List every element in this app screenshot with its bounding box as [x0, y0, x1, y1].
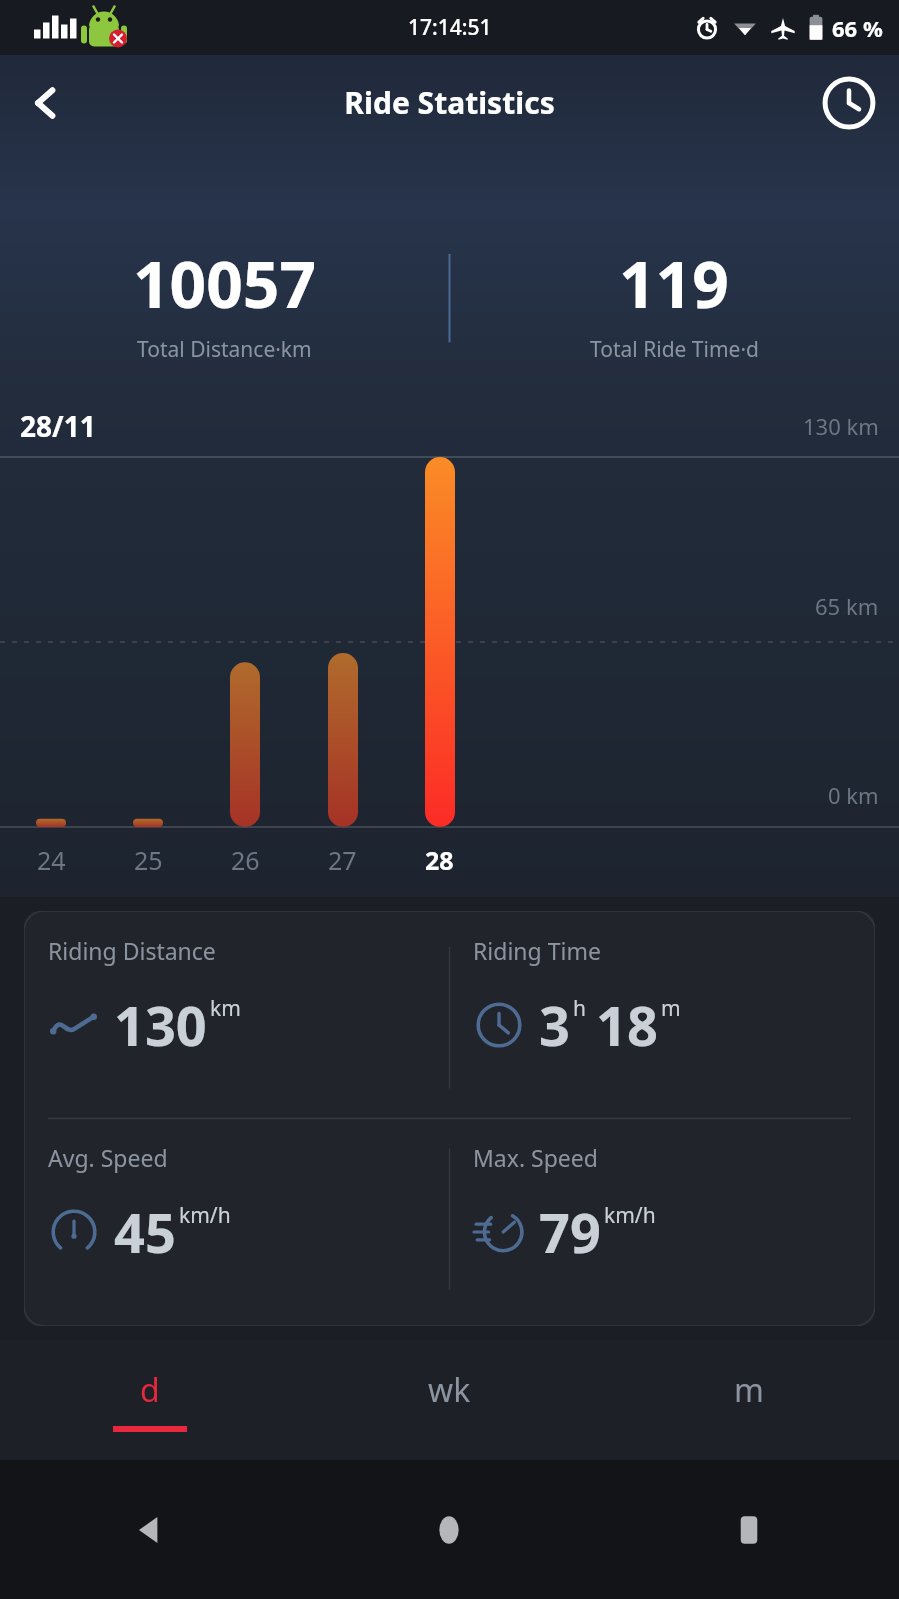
- button[interactable]: Home: [299, 1460, 599, 1599]
- button[interactable]: 119: [449, 240, 899, 364]
- staticText: Riding Distance: [48, 935, 216, 966]
- staticText: d: [140, 1368, 160, 1412]
- staticText: 17:14:51: [408, 13, 492, 42]
- staticText: Total Distance·km: [137, 335, 312, 364]
- button[interactable]: d: [0, 1340, 299, 1460]
- staticText: 18: [596, 988, 658, 1062]
- button[interactable]: wk: [299, 1340, 599, 1460]
- staticText: wk: [428, 1368, 471, 1412]
- button[interactable]: Riding Distance: [24, 911, 449, 1118]
- staticText: 79: [539, 1195, 601, 1269]
- button[interactable]: m: [599, 1340, 899, 1460]
- staticText: 45: [114, 1195, 176, 1269]
- button[interactable]: Max. Speed: [449, 1118, 875, 1326]
- staticText: 27: [328, 843, 357, 877]
- staticText: km: [210, 994, 241, 1023]
- staticText: km/h: [604, 1201, 656, 1230]
- staticText: 10057: [133, 240, 317, 327]
- staticText: 130: [114, 988, 207, 1062]
- staticText: 24: [37, 843, 66, 877]
- staticText: Riding Time: [473, 935, 601, 966]
- staticText: 25: [134, 843, 163, 877]
- staticText: m: [734, 1368, 764, 1412]
- staticText: Total Ride Time·d: [590, 335, 759, 364]
- staticText: Ride Statistics: [344, 82, 555, 123]
- staticText: Avg. Speed: [48, 1142, 168, 1173]
- button[interactable]: 10057: [0, 240, 449, 364]
- staticText: 130 km: [803, 411, 879, 441]
- staticText: 28: [425, 843, 454, 877]
- staticText: 26: [231, 843, 260, 877]
- staticText: km/h: [179, 1201, 231, 1230]
- staticText: Max. Speed: [473, 1142, 598, 1173]
- staticText: h: [573, 994, 586, 1023]
- staticText: 0 km: [828, 780, 879, 810]
- staticText: 28/11: [20, 407, 96, 445]
- staticText: 3: [539, 988, 570, 1062]
- button[interactable]: Riding Time: [449, 911, 875, 1118]
- staticText: 119: [619, 240, 729, 327]
- button[interactable]: History: [817, 71, 881, 135]
- staticText: m: [661, 994, 681, 1023]
- button[interactable]: Avg. Speed: [24, 1118, 449, 1326]
- staticText: 66 %: [832, 13, 883, 43]
- button[interactable]: Back: [14, 71, 78, 135]
- button[interactable]: Back: [0, 1460, 299, 1599]
- button[interactable]: Recents: [599, 1460, 899, 1599]
- staticText: 65 km: [815, 591, 879, 621]
